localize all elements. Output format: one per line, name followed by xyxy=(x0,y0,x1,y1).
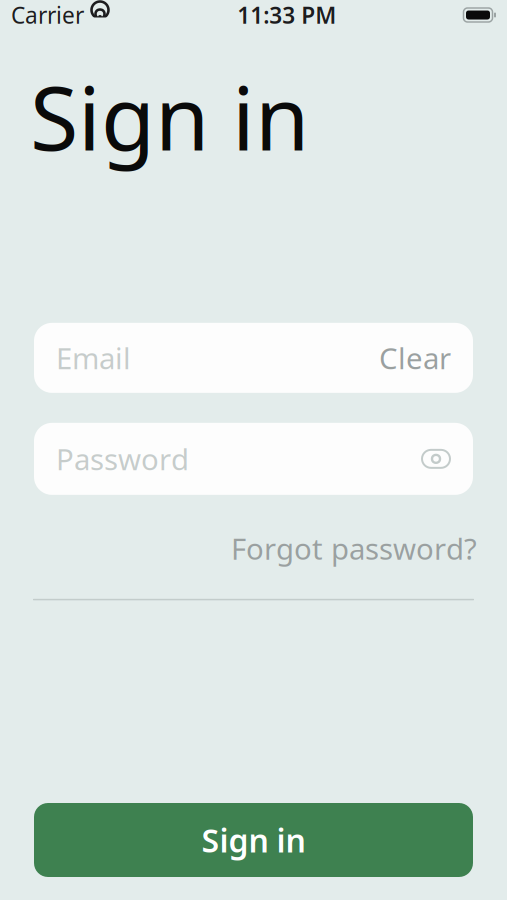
staticText: Carrier xyxy=(11,0,84,30)
button[interactable]: Forgot password? xyxy=(231,519,477,578)
staticText: Clear xyxy=(379,338,451,377)
staticText: 11:33 PM xyxy=(237,0,336,30)
staticText: Email xyxy=(56,338,131,377)
staticText: Sign in xyxy=(201,819,305,861)
staticText: Password xyxy=(56,439,189,478)
button[interactable]: Email xyxy=(34,323,473,393)
staticText: Sign in xyxy=(30,58,309,175)
button[interactable]: Password xyxy=(34,423,473,495)
button[interactable]: Sign in xyxy=(34,803,473,877)
staticText: Forgot password? xyxy=(231,529,477,568)
